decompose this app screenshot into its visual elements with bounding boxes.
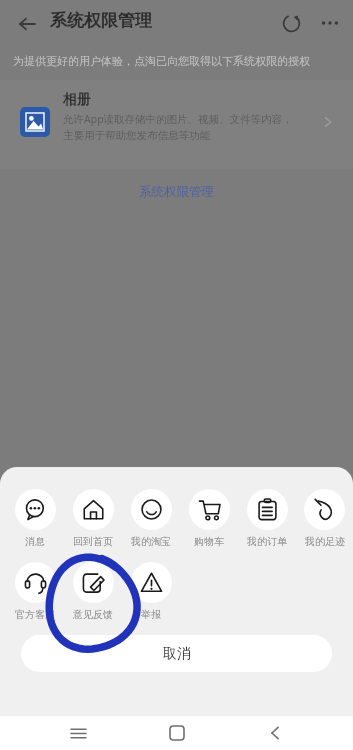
staticText: 举报: [141, 608, 161, 621]
button[interactable]: Home: [157, 716, 197, 750]
staticText: 意见反馈: [73, 608, 113, 621]
staticText: 为提供更好的用户体验，点淘已向您取得以下系统权限的授权: [13, 54, 310, 68]
staticText: 官方客服: [15, 608, 55, 621]
staticText: 我的淘宝: [131, 535, 171, 548]
button[interactable]: 意见反馈: [64, 562, 122, 621]
staticText: 我的足迹: [305, 535, 345, 548]
staticText: 主要用于帮助您发布信息等功能: [63, 129, 210, 142]
staticText: 取消: [163, 645, 191, 663]
button[interactable]: 官方客服: [6, 562, 64, 621]
staticText: 相册: [63, 91, 91, 109]
button[interactable]: Back: [12, 9, 42, 39]
staticText: 回到首页: [73, 535, 113, 548]
staticText: 系统权限管理: [139, 184, 214, 200]
staticText: 系统权限管理: [50, 10, 152, 31]
button[interactable]: 取消: [21, 635, 332, 672]
button[interactable]: 我的足迹: [296, 489, 353, 548]
staticText: 允许App读取存储中的图片、视频、文件等内容，: [63, 112, 293, 126]
button[interactable]: 我的淘宝: [122, 489, 180, 548]
button[interactable]: Refresh: [276, 8, 306, 38]
button[interactable]: 购物车: [180, 489, 238, 548]
button[interactable]: 我的订单: [238, 489, 296, 548]
staticText: 消息: [25, 535, 45, 548]
button[interactable]: More options: [315, 8, 345, 38]
button[interactable]: 回到首页: [64, 489, 122, 548]
staticText: 购物车: [194, 535, 224, 548]
button[interactable]: Back: [255, 716, 295, 750]
button[interactable]: 系统权限管理: [131, 180, 222, 204]
button[interactable]: 消息: [6, 489, 64, 548]
button[interactable]: 举报: [122, 562, 180, 621]
staticText: 我的订单: [247, 535, 287, 548]
button[interactable]: Recents: [58, 716, 98, 750]
